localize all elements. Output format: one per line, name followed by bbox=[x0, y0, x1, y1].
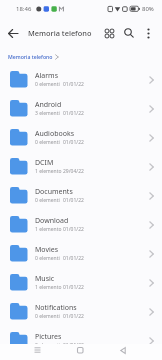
staticText: DCIM bbox=[35, 158, 54, 168]
button[interactable]: DCIM bbox=[10, 152, 154, 181]
button[interactable]: Notifications bbox=[10, 297, 154, 326]
staticText: 0 elementi bbox=[35, 342, 60, 349]
staticText: 01/01/22 bbox=[63, 342, 84, 349]
button[interactable]: Audiobooks bbox=[10, 123, 154, 152]
staticText: 3 elementi bbox=[35, 110, 60, 117]
button[interactable] bbox=[6, 26, 20, 40]
staticText: 0 elementi bbox=[35, 255, 60, 262]
staticText: 18:46 bbox=[16, 5, 32, 13]
button[interactable]: Music bbox=[10, 268, 154, 297]
staticText: 29/04/22 bbox=[63, 168, 84, 175]
staticText: Android bbox=[35, 100, 62, 110]
button[interactable] bbox=[74, 344, 86, 356]
staticText: 0 elementi bbox=[35, 197, 60, 204]
button[interactable] bbox=[122, 26, 136, 40]
staticText: 01/01/22 bbox=[63, 313, 84, 320]
staticText: 01/01/22 bbox=[63, 226, 84, 233]
button[interactable]: Movies bbox=[10, 239, 154, 268]
staticText: 01/01/22 bbox=[63, 197, 84, 204]
staticText: 1 elemento bbox=[35, 168, 62, 175]
staticText: Music bbox=[35, 274, 55, 284]
staticText: 80% bbox=[142, 5, 154, 13]
staticText: 1 elemento bbox=[35, 226, 62, 233]
button[interactable] bbox=[142, 27, 154, 39]
button[interactable]: Download bbox=[10, 210, 154, 239]
staticText: Memoria telefono bbox=[28, 28, 92, 38]
staticText: 01/01/22 bbox=[63, 139, 84, 146]
staticText: Download bbox=[35, 216, 69, 226]
staticText: Alarms bbox=[35, 71, 58, 81]
staticText: Movies bbox=[35, 245, 59, 255]
button[interactable] bbox=[117, 344, 129, 356]
staticText: 1 elemento bbox=[35, 284, 62, 291]
staticText: 0 elementi bbox=[35, 139, 60, 146]
button[interactable]: Documents bbox=[10, 181, 154, 210]
staticText: 01/01/22 bbox=[63, 284, 84, 291]
staticText: 01/01/22 bbox=[63, 110, 84, 117]
button[interactable]: Memoria telefono bbox=[8, 48, 162, 65]
staticText: 0 elementi bbox=[35, 313, 60, 320]
button[interactable]: Alarms bbox=[10, 65, 154, 94]
staticText: 01/01/22 bbox=[63, 81, 84, 88]
staticText: 0 elementi bbox=[35, 81, 60, 88]
staticText: Notifications bbox=[35, 303, 77, 313]
button[interactable] bbox=[102, 26, 116, 40]
button[interactable]: Pictures bbox=[10, 326, 154, 355]
staticText: Documents bbox=[35, 187, 73, 197]
staticText: Pictures bbox=[35, 332, 62, 342]
staticText: Memoria telefono bbox=[8, 53, 53, 60]
button[interactable]: Android bbox=[10, 94, 154, 123]
button[interactable] bbox=[31, 344, 43, 356]
staticText: 01/01/22 bbox=[63, 255, 84, 262]
staticText: Audiobooks bbox=[35, 129, 75, 139]
